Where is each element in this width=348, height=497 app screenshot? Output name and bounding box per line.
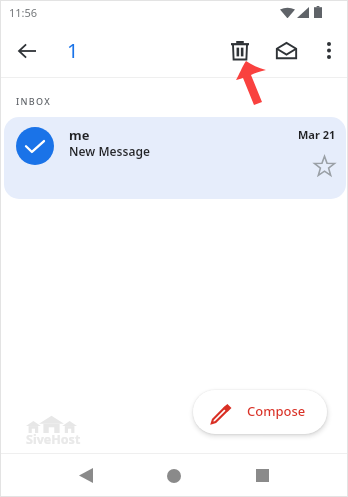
button[interactable]: Back bbox=[0, 24, 53, 77]
button[interactable]: Star bbox=[313, 155, 335, 177]
button[interactable]: Delete bbox=[217, 24, 263, 77]
button[interactable]: Mark as unread bbox=[263, 24, 309, 77]
staticText: Mar 21 bbox=[298, 127, 336, 142]
button[interactable]: Compose bbox=[193, 390, 327, 434]
staticText: me bbox=[69, 126, 90, 144]
staticText: Compose bbox=[247, 402, 306, 420]
staticText: 11:56 bbox=[9, 5, 38, 20]
button[interactable]: More options bbox=[309, 24, 348, 77]
button[interactable]: me bbox=[4, 117, 346, 199]
staticText: INBOX bbox=[16, 95, 51, 107]
button[interactable]: Home bbox=[150, 454, 198, 497]
button[interactable]: Recent apps bbox=[238, 454, 286, 497]
staticText: 1 bbox=[67, 37, 79, 64]
button[interactable]: Back bbox=[62, 454, 110, 497]
staticText: SiveHost bbox=[26, 431, 81, 448]
staticText: New Message bbox=[69, 143, 150, 159]
